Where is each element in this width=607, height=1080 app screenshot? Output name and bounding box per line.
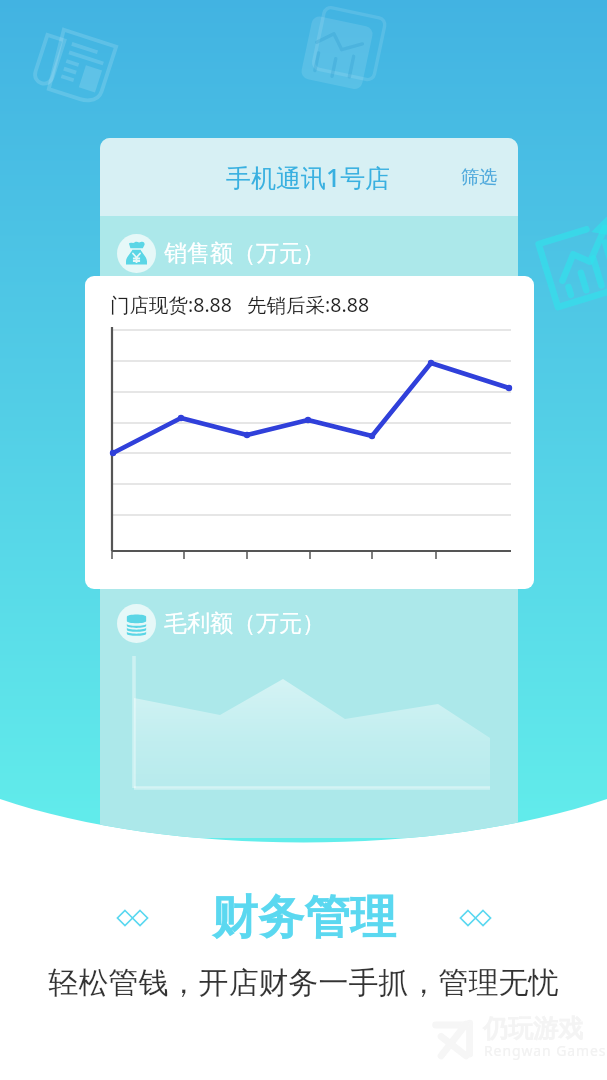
staticText: 仍玩游戏	[483, 1013, 583, 1044]
staticText: Rengwan Games	[484, 1041, 607, 1060]
staticText: 轻松管钱，开店财务一手抓，管理无忧	[0, 964, 607, 1002]
staticText: 手机通讯1号店	[226, 160, 391, 194]
staticText: 财务管理	[212, 889, 396, 947]
button[interactable]: 门店现货:8.88 先销后采:8.88	[85, 276, 534, 589]
staticText: 门店现货:8.88 先销后采:8.88	[110, 291, 370, 318]
button[interactable]: 筛选	[457, 162, 501, 193]
staticText: 毛利额（万元）	[164, 609, 325, 638]
staticText: 销售额（万元）	[164, 239, 325, 268]
staticText: 筛选	[461, 166, 497, 189]
